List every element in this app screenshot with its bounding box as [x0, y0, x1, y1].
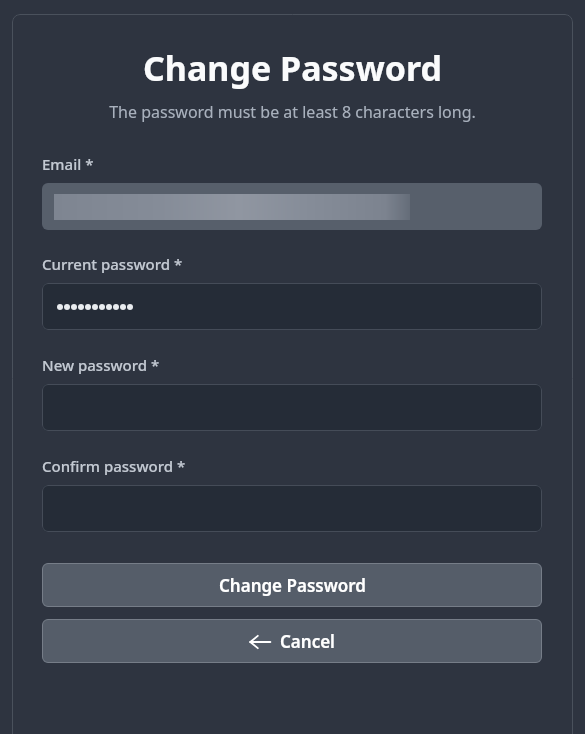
button[interactable]: Change Password [42, 563, 542, 607]
staticText: Current password * [42, 254, 183, 274]
button[interactable] [42, 485, 542, 532]
staticText: Email * [42, 154, 94, 174]
button[interactable] [42, 283, 542, 330]
staticText: Change Password [0, 45, 585, 91]
staticText: Cancel [280, 630, 335, 653]
staticText: The password must be at least 8 characte… [0, 101, 585, 123]
button[interactable] [42, 384, 542, 431]
staticText: New password * [42, 355, 160, 375]
staticText: Confirm password * [42, 456, 186, 476]
button[interactable] [42, 183, 542, 230]
other: Back [249, 633, 271, 651]
staticText: Change Password [219, 574, 366, 597]
button[interactable]: Back [42, 619, 542, 663]
